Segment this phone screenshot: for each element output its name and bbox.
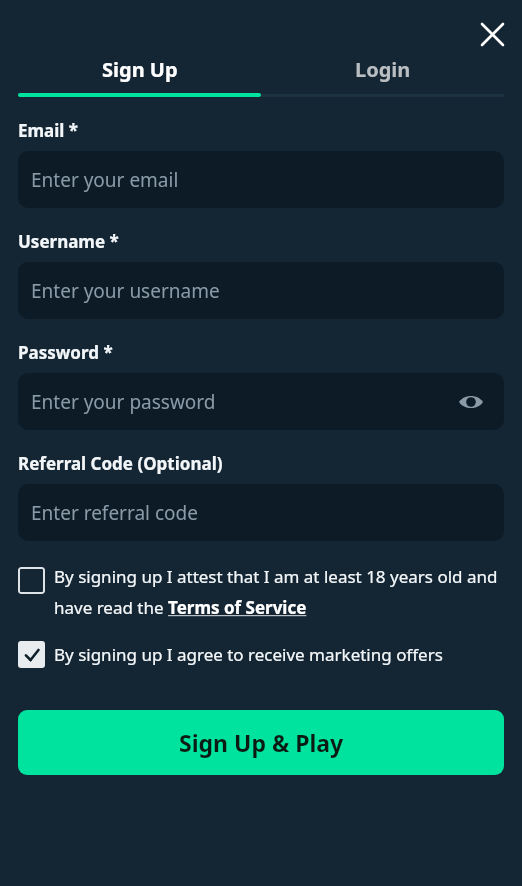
button[interactable]: Show password xyxy=(458,389,484,415)
button[interactable]: Sign Up xyxy=(18,52,261,86)
staticText: Enter your username xyxy=(31,278,220,304)
button[interactable]: By signing up I agree to receive marketi… xyxy=(18,641,504,668)
staticText: Referral Code (Optional) xyxy=(18,452,223,475)
staticText: Enter your password xyxy=(31,389,216,415)
staticText: Sign Up xyxy=(102,56,178,83)
staticText: By signing up I attest that I am at leas… xyxy=(54,565,504,619)
button[interactable]: Sign Up & Play xyxy=(18,710,504,775)
button[interactable]: Enter your username xyxy=(18,262,504,319)
button[interactable]: Close xyxy=(472,14,512,54)
button[interactable]: By signing up I attest that I am at leas… xyxy=(18,565,504,619)
staticText: Login xyxy=(355,56,411,83)
staticText: By signing up I agree to receive marketi… xyxy=(54,643,443,666)
staticText: Sign Up & Play xyxy=(179,727,344,758)
button[interactable]: Enter your email xyxy=(18,151,504,208)
button[interactable]: Login xyxy=(261,52,504,86)
button[interactable]: Enter referral code xyxy=(18,484,504,541)
staticText: Email * xyxy=(18,119,79,142)
staticText: Password * xyxy=(18,341,113,364)
staticText: Username * xyxy=(18,230,119,253)
staticText: Enter referral code xyxy=(31,500,198,526)
staticText: Enter your email xyxy=(31,167,179,193)
button[interactable]: Enter your password xyxy=(18,373,504,430)
